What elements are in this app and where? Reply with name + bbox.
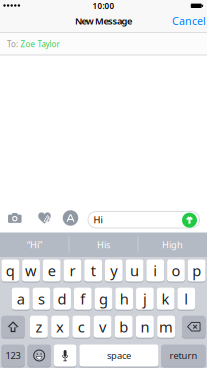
- button[interactable]: Delete: [182, 315, 205, 338]
- button[interactable]: v: [94, 315, 111, 338]
- button[interactable]: High: [138, 232, 206, 257]
- staticText: f: [80, 289, 85, 308]
- staticText: y: [110, 261, 117, 280]
- button[interactable]: Send: [182, 213, 197, 228]
- staticText: His: [97, 239, 110, 251]
- staticText: 123: [6, 349, 21, 362]
- button[interactable]: 123: [1, 344, 25, 367]
- button[interactable]: j: [136, 287, 154, 310]
- button[interactable]: “Hi”: [0, 232, 68, 257]
- button[interactable]: return: [161, 344, 205, 367]
- button[interactable]: x: [51, 315, 69, 338]
- staticText: b: [119, 317, 128, 336]
- staticText: k: [162, 289, 170, 308]
- staticText: To:: [7, 39, 18, 49]
- button[interactable]: Emoji: [28, 344, 51, 367]
- staticText: t: [91, 261, 96, 280]
- button[interactable]: iMessage apps: [63, 210, 78, 226]
- staticText: o: [171, 261, 180, 280]
- staticText: p: [192, 261, 201, 280]
- staticText: z: [35, 317, 42, 336]
- button[interactable]: Camera: [8, 213, 22, 223]
- button[interactable]: d: [53, 287, 71, 310]
- button[interactable]: Cancel: [172, 10, 206, 32]
- button[interactable]: u: [126, 259, 143, 282]
- button[interactable]: Digital Touch: [38, 212, 51, 224]
- staticText: a: [17, 289, 25, 308]
- button[interactable]: space: [79, 344, 158, 367]
- button[interactable]: h: [115, 287, 133, 310]
- button[interactable]: f: [74, 287, 92, 310]
- staticText: u: [130, 261, 139, 280]
- button[interactable]: His: [69, 232, 137, 257]
- staticText: x: [56, 317, 64, 336]
- staticText: Zoe Taylor: [20, 39, 59, 49]
- button[interactable]: o: [167, 259, 185, 282]
- button[interactable]: e: [43, 259, 61, 282]
- button[interactable]: p: [188, 259, 205, 282]
- button[interactable]: t: [84, 259, 102, 282]
- staticText: h: [120, 289, 129, 308]
- button[interactable]: k: [157, 287, 174, 310]
- button[interactable]: i: [146, 259, 164, 282]
- staticText: High: [162, 239, 183, 251]
- button[interactable]: s: [32, 287, 50, 310]
- staticText: c: [78, 317, 85, 336]
- staticText: v: [99, 317, 106, 336]
- staticText: j: [143, 289, 147, 308]
- staticText: m: [159, 317, 173, 336]
- staticText: e: [48, 261, 56, 280]
- button[interactable]: Shift: [1, 315, 25, 338]
- button[interactable]: n: [136, 315, 154, 338]
- button[interactable]: b: [115, 315, 133, 338]
- staticText: return: [169, 349, 197, 362]
- staticText: space: [107, 349, 131, 362]
- staticText: n: [140, 317, 149, 336]
- staticText: l: [184, 289, 188, 308]
- button[interactable]: a: [12, 287, 29, 310]
- staticText: s: [38, 289, 45, 308]
- button[interactable]: Dictate: [54, 344, 76, 367]
- button[interactable]: m: [157, 315, 175, 338]
- button[interactable]: r: [64, 259, 81, 282]
- staticText: New Message: [75, 15, 132, 27]
- button[interactable]: y: [105, 259, 123, 282]
- staticText: q: [6, 261, 15, 280]
- staticText: d: [58, 289, 67, 308]
- button[interactable]: g: [95, 287, 112, 310]
- button[interactable]: z: [30, 315, 48, 338]
- button[interactable]: c: [72, 315, 90, 338]
- staticText: 10:00: [92, 0, 114, 11]
- staticText: Cancel: [172, 14, 206, 28]
- staticText: i: [153, 261, 157, 280]
- staticText: “Hi”: [27, 239, 42, 251]
- button[interactable]: q: [1, 259, 19, 282]
- staticText: r: [69, 261, 75, 280]
- button[interactable]: w: [22, 259, 40, 282]
- staticText: w: [25, 261, 37, 280]
- staticText: Hi: [93, 213, 102, 226]
- button[interactable]: l: [177, 287, 195, 310]
- staticText: g: [99, 289, 108, 308]
